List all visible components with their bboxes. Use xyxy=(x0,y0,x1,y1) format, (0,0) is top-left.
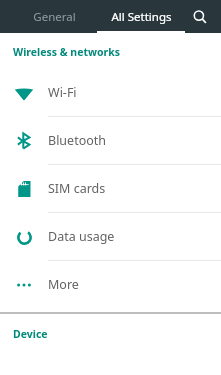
staticText: SIM cards xyxy=(48,180,106,197)
staticText: All Settings xyxy=(111,9,172,25)
staticText: Device xyxy=(13,327,48,341)
button[interactable]: Data usage xyxy=(0,213,221,260)
staticText: Wi-Fi xyxy=(48,84,77,101)
button[interactable]: All Settings xyxy=(97,0,185,33)
button[interactable]: Search xyxy=(187,4,213,30)
button[interactable]: SIM cards xyxy=(0,165,221,212)
staticText: Wireless & networks xyxy=(13,45,120,59)
staticText: Bluetooth xyxy=(48,132,107,149)
button[interactable]: Bluetooth xyxy=(0,117,221,164)
button[interactable]: More xyxy=(0,261,221,308)
staticText: General xyxy=(33,9,76,25)
staticText: More xyxy=(48,276,79,293)
staticText: Data usage xyxy=(48,228,115,245)
button[interactable]: General xyxy=(14,0,94,33)
button[interactable]: Wi-Fi xyxy=(0,69,221,116)
